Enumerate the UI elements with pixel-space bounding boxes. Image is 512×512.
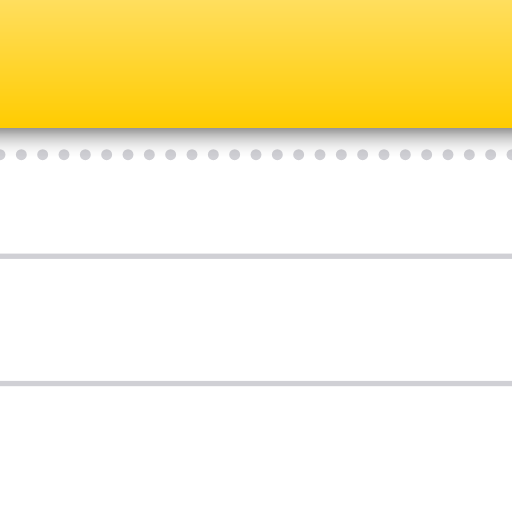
button[interactable]: Note line 1 [0,128,512,259]
button[interactable]: Note header [0,0,512,128]
button[interactable]: Note line 2 [0,259,512,386]
